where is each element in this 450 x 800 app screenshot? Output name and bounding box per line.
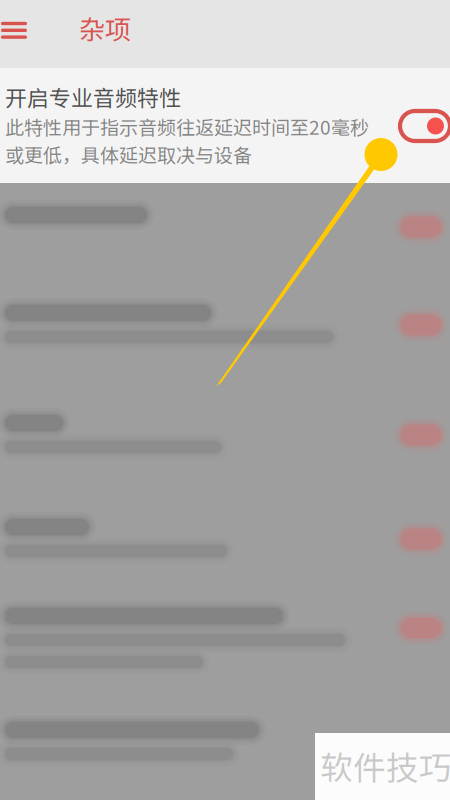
button[interactable]: 开启专业音频特性	[400, 111, 450, 141]
staticText: 开启专业音频特性	[5, 81, 181, 113]
button[interactable]: 杂项	[0, 0, 450, 68]
staticText: 软件技巧	[320, 742, 450, 789]
staticText: 杂项	[79, 9, 131, 47]
staticText: 此特性用于指示音频往返延迟时间至20毫秒	[5, 113, 369, 140]
staticText: 或更低，具体延迟取决与设备	[5, 140, 252, 168]
